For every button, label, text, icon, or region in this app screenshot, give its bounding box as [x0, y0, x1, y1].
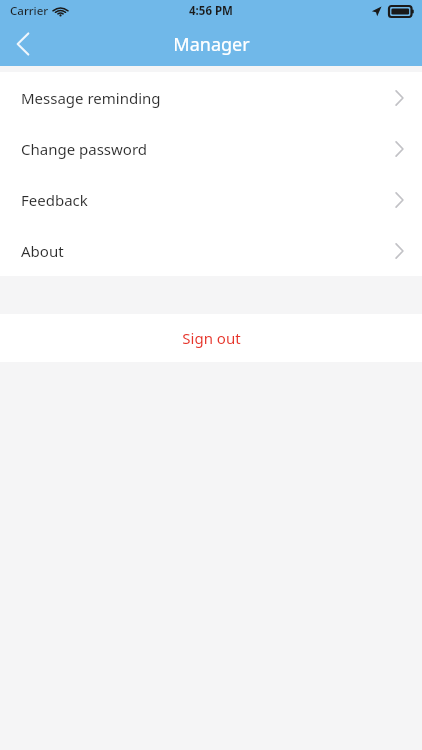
staticText: Change password	[21, 139, 148, 159]
button[interactable]: About	[0, 225, 422, 276]
button[interactable]: Change password	[0, 123, 422, 174]
button[interactable]: Message reminding	[0, 72, 422, 123]
staticText: Manager	[173, 32, 250, 57]
button[interactable]: Feedback	[0, 174, 422, 225]
staticText: 4:56 PM	[189, 3, 233, 19]
staticText: Sign out	[182, 328, 241, 348]
staticText: Feedback	[21, 190, 88, 210]
staticText: Message reminding	[21, 88, 161, 108]
staticText: About	[21, 241, 64, 261]
button[interactable]: Sign out	[0, 314, 422, 362]
staticText: Carrier	[10, 3, 49, 19]
button[interactable]: Back	[0, 22, 46, 66]
